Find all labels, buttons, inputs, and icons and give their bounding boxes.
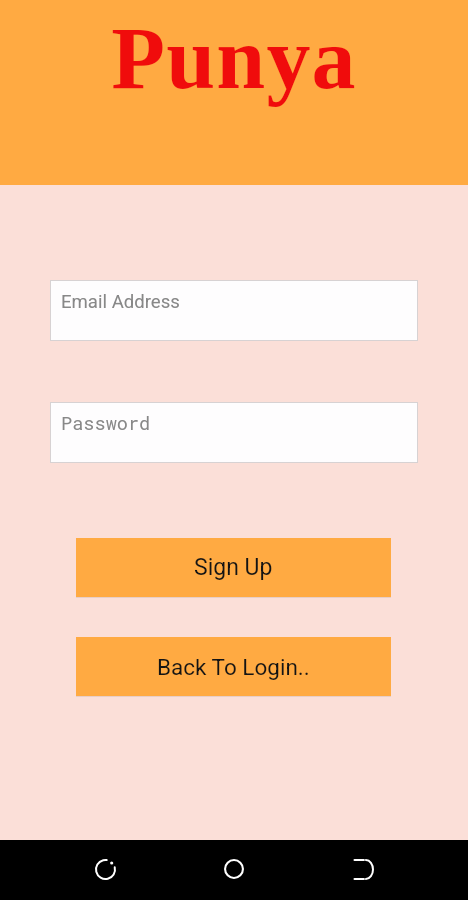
button[interactable]: Sign Up (76, 538, 391, 597)
button[interactable]: Recent apps (339, 845, 387, 893)
button[interactable]: Password (50, 402, 418, 463)
button[interactable]: Back To Login.. (76, 637, 391, 696)
button[interactable]: Email Address (50, 280, 418, 341)
button[interactable]: Back (81, 845, 129, 893)
staticText: Email Address (61, 291, 180, 313)
staticText: Password (61, 411, 151, 436)
button[interactable]: Home (210, 845, 258, 893)
staticText: Back To Login.. (157, 654, 310, 680)
staticText: Sign Up (194, 554, 273, 581)
staticText: Punya (0, 10, 468, 107)
